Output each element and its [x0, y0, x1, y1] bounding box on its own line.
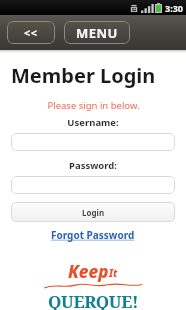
- staticText: 3:30: [165, 2, 183, 14]
- staticText: It: [109, 266, 118, 280]
- staticText: Forgot Password: [51, 228, 135, 242]
- button[interactable]: [11, 176, 175, 194]
- staticText: Username:: [67, 116, 119, 129]
- staticText: Login: [82, 207, 105, 218]
- button[interactable]: Login: [11, 202, 175, 222]
- staticText: QUERQUE!: [48, 290, 139, 310]
- button[interactable]: Back: [7, 21, 55, 44]
- staticText: Please sign in below.: [47, 99, 140, 112]
- button[interactable]: Forgot Password: [51, 228, 135, 242]
- button[interactable]: [11, 133, 175, 151]
- staticText: <<: [24, 25, 38, 40]
- staticText: Password:: [69, 159, 117, 172]
- staticText: Keep: [68, 260, 109, 282]
- staticText: Member Login: [11, 62, 156, 89]
- button[interactable]: MENU: [64, 21, 130, 44]
- staticText: MENU: [76, 24, 118, 42]
